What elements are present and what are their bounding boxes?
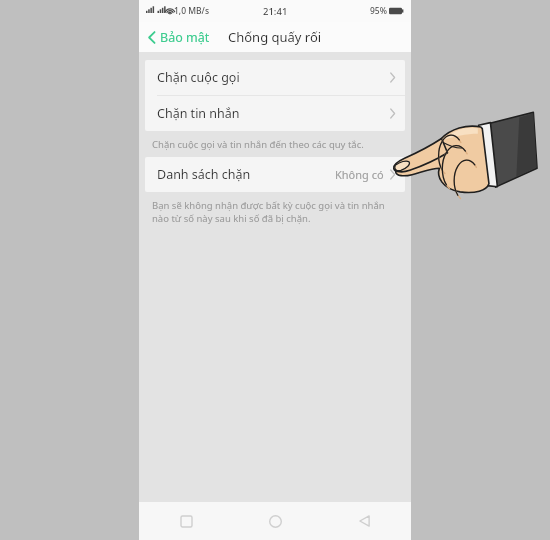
staticText: Chống quấy rối xyxy=(228,28,322,46)
staticText: Bạn sẽ không nhận được bất kỳ cuộc gọi v… xyxy=(152,199,397,225)
staticText: Chặn cuộc gọi và tin nhắn đến theo các q… xyxy=(152,138,397,151)
staticText: 21:41 xyxy=(263,5,288,18)
button[interactable]: Recent apps xyxy=(169,504,203,538)
button[interactable]: Chặn tin nhắn xyxy=(145,96,405,131)
button[interactable]: Chặn cuộc gọi xyxy=(145,60,405,95)
button[interactable]: Danh sách chặn xyxy=(145,157,405,192)
staticText: Không có xyxy=(335,167,384,182)
button[interactable]: Back xyxy=(347,504,381,538)
staticText: Bảo mật xyxy=(160,29,210,46)
staticText: Chặn cuộc gọi xyxy=(157,69,240,86)
staticText: 95% xyxy=(370,5,387,17)
button[interactable]: Bảo mật xyxy=(144,25,214,50)
staticText: Danh sách chặn xyxy=(157,166,251,183)
button[interactable]: Home xyxy=(258,504,292,538)
staticText: 1,0 MB/s xyxy=(174,5,210,17)
staticText: Chặn tin nhắn xyxy=(157,105,240,122)
